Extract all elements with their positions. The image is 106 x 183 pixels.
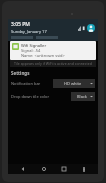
staticText: Settings	[11, 70, 30, 76]
button[interactable]: Home	[39, 164, 49, 174]
staticText: HD white	[64, 81, 82, 86]
staticText: Tile appears only if WiFi is active and …	[14, 61, 92, 66]
button[interactable]: More options	[80, 165, 88, 173]
staticText: Black	[77, 94, 87, 99]
button[interactable]: Tile appears only if WiFi is active and …	[10, 60, 96, 67]
staticText: 3:05 PM	[11, 21, 30, 28]
staticText: Signal: -54	[21, 48, 41, 53]
staticText: Sunday, January 17	[11, 29, 47, 34]
button[interactable]: Recent apps	[59, 164, 69, 174]
button[interactable]: Black	[71, 92, 95, 101]
staticText: Notification bar	[11, 81, 51, 86]
button[interactable]: Wifi Signaller	[10, 41, 96, 60]
staticText: Name: <unknown ssid>	[21, 53, 65, 58]
staticText: Wifi Signaller	[21, 43, 47, 48]
staticText: Drop down tile color	[11, 94, 69, 99]
button[interactable]: Account	[87, 24, 95, 32]
button[interactable]: Back	[18, 164, 28, 174]
button[interactable]: HD white	[53, 79, 95, 88]
